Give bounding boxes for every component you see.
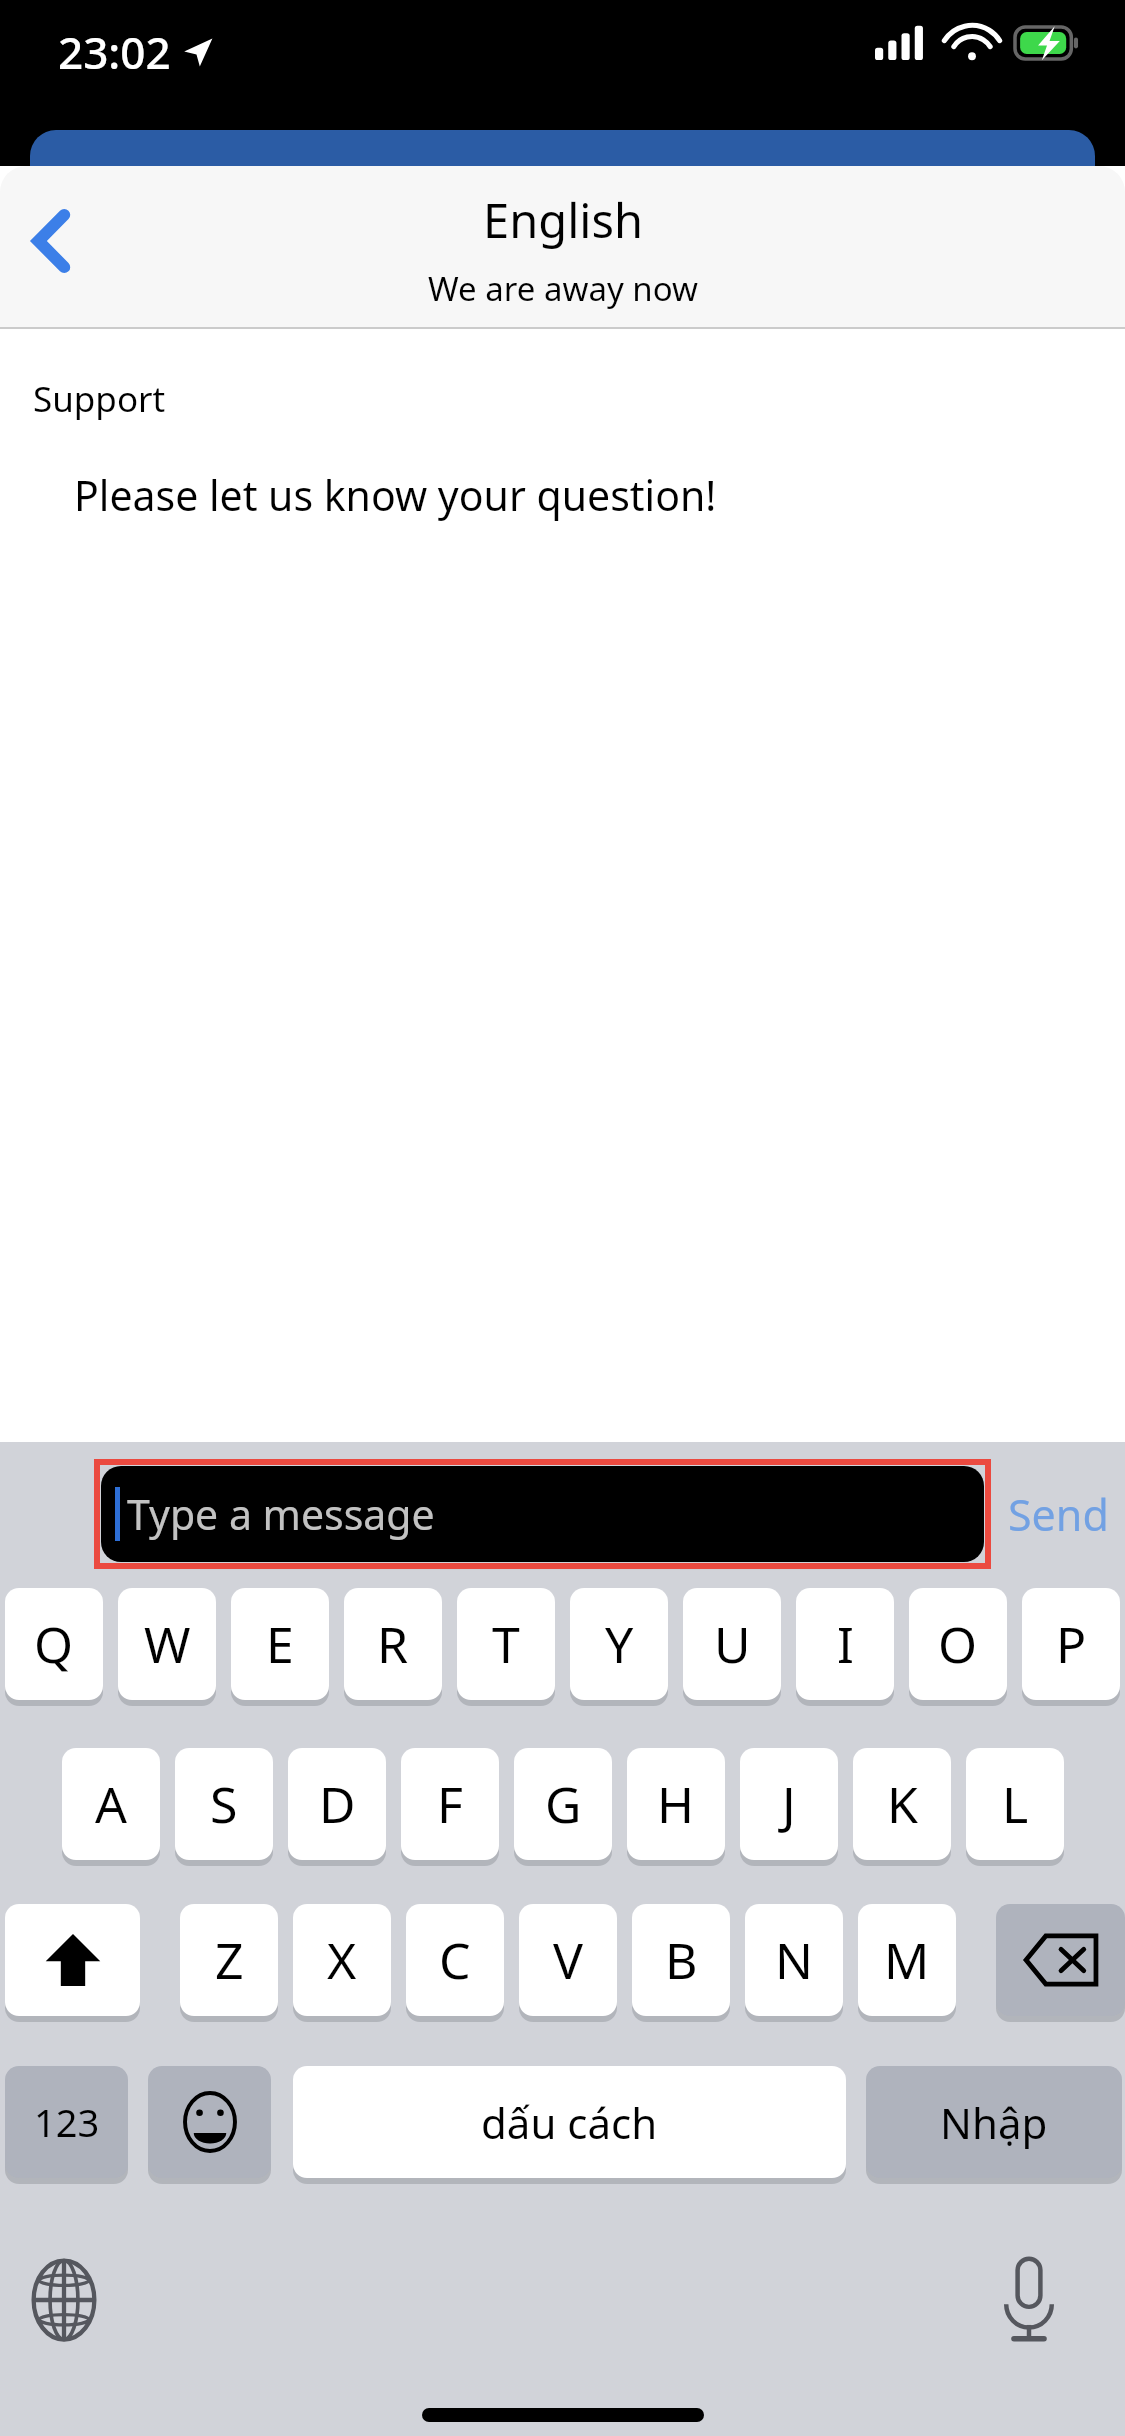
staticText: Q [34, 1610, 74, 1678]
button[interactable]: K [853, 1748, 951, 1868]
staticText: F [437, 1770, 463, 1838]
button[interactable]: F [401, 1748, 499, 1868]
staticText: B [665, 1926, 698, 1994]
staticText: I [837, 1610, 854, 1678]
button[interactable]: N [745, 1904, 843, 2024]
staticText: T [492, 1610, 520, 1678]
staticText: R [377, 1610, 409, 1678]
button[interactable]: O [909, 1588, 1007, 1708]
staticText: U [714, 1610, 751, 1678]
button[interactable]: D [288, 1748, 386, 1868]
staticText: dấu cách [481, 2094, 658, 2151]
button[interactable]: G [514, 1748, 612, 1868]
button[interactable]: U [683, 1588, 781, 1708]
staticText: W [144, 1610, 191, 1678]
button[interactable]: V [519, 1904, 617, 2024]
button[interactable]: L [966, 1748, 1064, 1868]
button[interactable]: X [293, 1904, 391, 2024]
button[interactable]: J [740, 1748, 838, 1868]
button[interactable]: Dictation [977, 2248, 1081, 2352]
staticText: C [439, 1926, 471, 1994]
button[interactable]: P [1022, 1588, 1120, 1708]
button[interactable]: Backspace [996, 1904, 1125, 2024]
staticText: N [775, 1926, 813, 1994]
button[interactable]: Shift [5, 1904, 140, 2024]
button[interactable]: 123 [5, 2066, 128, 2186]
button[interactable]: Back [4, 186, 100, 296]
button[interactable]: Emoji [148, 2066, 271, 2186]
staticText: X [327, 1926, 357, 1994]
staticText: O [938, 1610, 978, 1678]
staticText: Nhập [940, 2094, 1048, 2151]
button[interactable]: T [457, 1588, 555, 1708]
button[interactable]: S [175, 1748, 273, 1868]
button[interactable]: W [118, 1588, 216, 1708]
button[interactable]: A [62, 1748, 160, 1868]
staticText: L [1002, 1770, 1029, 1838]
staticText: Support [33, 375, 166, 423]
staticText: Type a message [127, 1486, 435, 1542]
button[interactable]: Send [991, 1442, 1125, 1586]
button[interactable]: B [632, 1904, 730, 2024]
staticText: A [95, 1770, 127, 1838]
button[interactable]: E [231, 1588, 329, 1708]
button[interactable]: Y [570, 1588, 668, 1708]
button[interactable]: Z [180, 1904, 278, 2024]
staticText: H [657, 1770, 695, 1838]
button[interactable]: Q [5, 1588, 103, 1708]
button[interactable]: C [406, 1904, 504, 2024]
staticText: M [884, 1926, 930, 1994]
staticText: V [553, 1926, 583, 1994]
button[interactable]: H [627, 1748, 725, 1868]
button[interactable]: dấu cách [293, 2066, 846, 2186]
staticText: S [210, 1770, 238, 1838]
staticText: D [319, 1770, 356, 1838]
staticText: P [1056, 1610, 1087, 1678]
staticText: We are away now [428, 266, 698, 311]
staticText: English [483, 188, 643, 252]
staticText: Z [215, 1926, 244, 1994]
staticText: Send [1008, 1485, 1109, 1544]
staticText: E [266, 1610, 294, 1678]
staticText: K [887, 1770, 918, 1838]
button[interactable]: M [858, 1904, 956, 2024]
button[interactable]: I [796, 1588, 894, 1708]
button[interactable]: Change keyboard language [12, 2248, 116, 2352]
button[interactable]: R [344, 1588, 442, 1708]
button[interactable]: Type a message [101, 1466, 984, 1562]
staticText: 23:02 [58, 22, 171, 82]
button[interactable]: Nhập [866, 2066, 1122, 2186]
staticText: 123 [34, 2096, 100, 2148]
staticText: J [782, 1770, 796, 1838]
staticText: G [545, 1770, 582, 1838]
staticText: Y [605, 1610, 634, 1678]
staticText: Please let us know your question! [74, 467, 717, 523]
